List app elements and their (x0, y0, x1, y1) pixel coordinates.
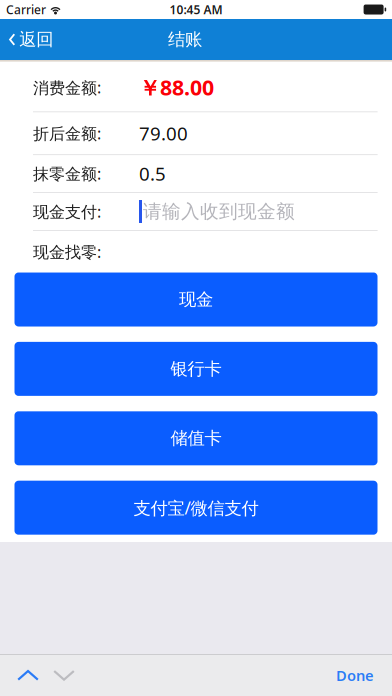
staticText: 银行卡 (170, 358, 221, 380)
staticText: 请输入收到现金额 (143, 200, 295, 223)
button[interactable]: Next field (46, 654, 82, 696)
staticText: 现金 (179, 289, 213, 310)
staticText: 储值卡 (170, 428, 221, 449)
button[interactable]: 现金 (14, 272, 377, 326)
button[interactable]: 银行卡 (14, 342, 377, 396)
staticText: 0.5 (139, 161, 166, 186)
button[interactable]: 请输入收到现金额 (139, 193, 377, 230)
staticText: 支付宝/微信支付 (133, 496, 258, 519)
button[interactable]: 返回 (0, 19, 63, 60)
staticText: 现金找零: (33, 241, 101, 262)
staticText: 消费金额: (33, 77, 101, 98)
staticText: 79.00 (139, 121, 188, 146)
staticText: Done (336, 666, 374, 685)
button[interactable]: Previous field (10, 654, 46, 696)
button[interactable]: 储值卡 (14, 411, 377, 465)
staticText: 现金支付: (33, 201, 101, 222)
staticText: ￥88.00 (139, 73, 214, 102)
button[interactable]: Done (318, 654, 392, 696)
staticText: 折后金额: (33, 123, 101, 144)
staticText: 返回 (19, 29, 53, 50)
staticText: 抹零金额: (33, 163, 101, 184)
staticText: 10:45 AM (169, 1, 222, 17)
staticText: Carrier (6, 1, 46, 17)
button[interactable]: 支付宝/微信支付 (14, 481, 377, 535)
staticText: 结账 (168, 29, 202, 50)
